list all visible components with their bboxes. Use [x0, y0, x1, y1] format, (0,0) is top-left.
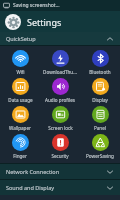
button[interactable]: QuickSetup: [0, 32, 120, 45]
other: Settings icon: [5, 14, 21, 30]
button[interactable]: Audio profiles: [40, 76, 80, 104]
button[interactable]: Panel: [80, 104, 120, 132]
staticText: Saving screenshot...: [13, 2, 60, 9]
button[interactable]: Security: [40, 132, 80, 160]
other: Expand: [106, 168, 114, 176]
button[interactable]: Data usage: [0, 76, 40, 104]
staticText: Data usage: [8, 97, 33, 103]
staticText: Sound and Display: [6, 184, 106, 191]
button[interactable]: Wifi: [0, 48, 40, 76]
staticText: Panel: [94, 125, 106, 131]
button[interactable]: Finger: [0, 132, 40, 160]
staticText: Bluetooth: [89, 69, 111, 75]
staticText: Finger: [13, 153, 27, 159]
button[interactable]: Bluetooth: [80, 48, 120, 76]
button[interactable]: DownloadThu...: [40, 48, 80, 76]
staticText: Wallpaper: [9, 125, 31, 131]
staticText: Security: [51, 153, 69, 159]
button[interactable]: PowerSaving: [80, 132, 120, 160]
staticText: Display: [92, 97, 108, 103]
button[interactable]: Screen lock: [40, 104, 80, 132]
staticText: Audio profiles: [45, 97, 75, 103]
other: Collapse: [106, 35, 114, 43]
staticText: Settings: [27, 16, 62, 28]
button[interactable]: Wallpaper: [0, 104, 40, 132]
staticText: PowerSaving: [86, 153, 114, 159]
staticText: Screen lock: [48, 125, 73, 131]
button[interactable]: Display: [80, 76, 120, 104]
staticText: QuickSetup: [6, 35, 106, 42]
staticText: Wifi: [16, 69, 25, 75]
button[interactable]: Network Connection: [0, 164, 120, 179]
other: Expand: [106, 184, 114, 192]
staticText: Network Connection: [6, 168, 106, 175]
button[interactable]: Sound and Display: [0, 180, 120, 195]
staticText: DownloadThu...: [43, 69, 77, 75]
button[interactable]: Settings icon: [0, 11, 120, 32]
